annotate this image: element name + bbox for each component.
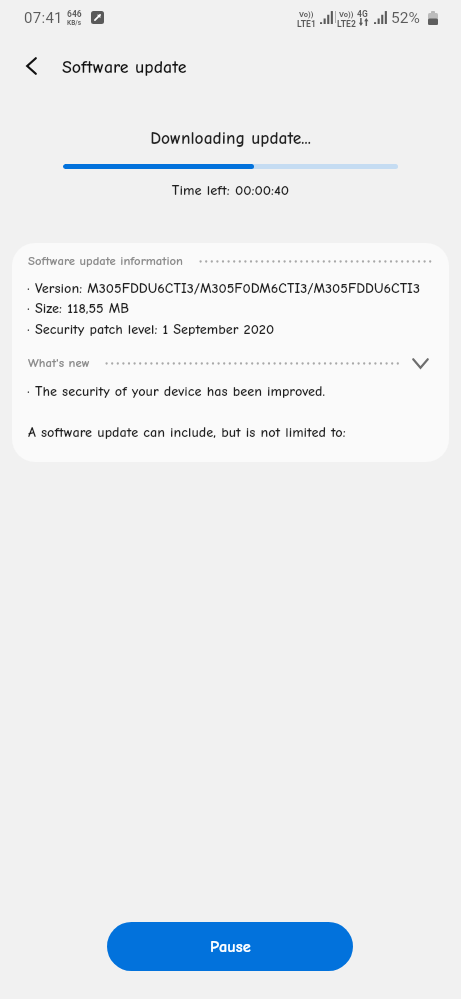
staticText: LTE2 <box>337 19 356 29</box>
staticText: · The security of your device has been i… <box>27 383 326 399</box>
staticText: LTE1 <box>297 19 316 29</box>
staticText: Time left: 00:00:40 <box>0 182 461 199</box>
staticText: A software update can include, but is no… <box>28 424 346 440</box>
staticText: Vo)) <box>299 10 314 19</box>
staticText: Software update information <box>28 254 184 269</box>
staticText: Vo)) <box>339 10 354 19</box>
staticText: Software update <box>62 57 187 78</box>
staticText: What's new <box>28 356 90 371</box>
staticText: · Size: 118,55 MB <box>27 300 129 316</box>
staticText: · Security patch level: 1 September 2020 <box>27 321 275 337</box>
staticText: 646 <box>67 9 82 19</box>
staticText: Pause <box>210 937 251 956</box>
staticText: KB/s <box>67 19 82 27</box>
staticText: 52% <box>391 9 420 27</box>
staticText: 4G <box>357 9 368 19</box>
button[interactable]: Expand what's new <box>28 350 432 376</box>
button[interactable]: Pause <box>107 922 353 971</box>
staticText: 07:41 <box>24 9 63 27</box>
staticText: · Version: M305FDDU6CTI3/M305F0DM6CTI3/M… <box>27 280 420 296</box>
staticText: Downloading update... <box>0 128 461 148</box>
button[interactable]: Back <box>11 46 51 86</box>
